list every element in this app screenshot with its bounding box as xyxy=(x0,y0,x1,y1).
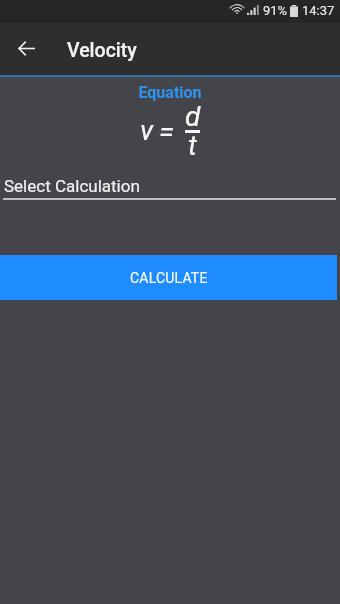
staticText: CALCULATE xyxy=(130,270,208,286)
staticText: t xyxy=(188,129,197,162)
button[interactable]: Back xyxy=(10,23,42,74)
staticText: Equation xyxy=(0,83,340,102)
staticText: Velocity xyxy=(67,39,137,62)
staticText: Select Calculation xyxy=(4,176,140,196)
staticText: 91% xyxy=(263,3,288,18)
staticText: = xyxy=(159,115,174,148)
button[interactable]: Select Calculation xyxy=(0,172,340,202)
staticText: d xyxy=(185,100,201,133)
staticText: v xyxy=(140,114,154,147)
staticText: 14:37 xyxy=(302,3,335,18)
button[interactable]: CALCULATE xyxy=(0,255,337,300)
